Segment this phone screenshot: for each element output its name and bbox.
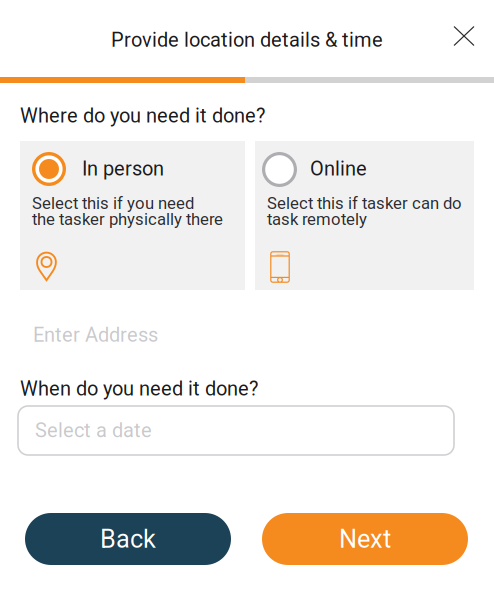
staticText: Enter Address <box>33 323 158 347</box>
staticText: In person <box>82 157 164 180</box>
staticText: Where do you need it done? <box>20 104 265 127</box>
staticText: Select this if you need <box>32 193 194 213</box>
staticText: Online <box>310 157 367 180</box>
staticText: the tasker physically there <box>32 209 223 229</box>
staticText: When do you need it done? <box>20 377 258 400</box>
staticText: Select a date <box>35 419 152 442</box>
button[interactable]: In person <box>20 141 245 290</box>
button[interactable]: Enter Address <box>20 311 474 359</box>
button[interactable]: Next <box>262 513 468 565</box>
button[interactable]: Close <box>441 13 487 59</box>
staticText: Next <box>339 524 391 554</box>
staticText: Provide location details & time <box>111 28 383 52</box>
button[interactable]: Select a date <box>18 406 454 455</box>
button[interactable]: Online <box>255 141 474 290</box>
staticText: task remotely <box>267 209 367 229</box>
staticText: Select this if tasker can do <box>267 193 462 213</box>
button[interactable]: Back <box>25 513 231 565</box>
staticText: Back <box>100 524 156 554</box>
